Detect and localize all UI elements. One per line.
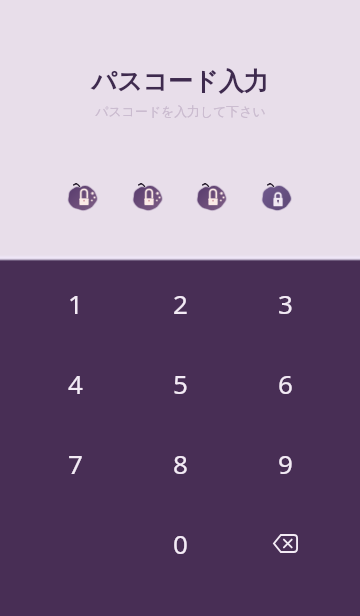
staticText: 2 <box>173 286 188 321</box>
button[interactable]: 4 <box>22 343 128 423</box>
button[interactable]: 5 <box>128 343 233 423</box>
button[interactable]: 6 <box>233 343 338 423</box>
staticText: 3 <box>278 286 293 321</box>
button[interactable]: 0 <box>128 503 233 583</box>
button[interactable]: 2 <box>128 263 233 343</box>
button[interactable]: 9 <box>233 423 338 503</box>
staticText: 0 <box>173 526 188 561</box>
staticText: パスコードを入力して下さい <box>95 104 266 120</box>
staticText: 9 <box>278 446 293 481</box>
button[interactable]: Backspace <box>233 503 338 583</box>
staticText: 6 <box>278 366 293 401</box>
button[interactable]: 3 <box>233 263 338 343</box>
button[interactable]: 8 <box>128 423 233 503</box>
button[interactable]: 1 <box>22 263 128 343</box>
staticText: 5 <box>173 366 188 401</box>
staticText: パスコード入力 <box>91 66 269 97</box>
button[interactable]: 7 <box>22 423 128 503</box>
staticText: 7 <box>68 446 83 481</box>
staticText: 4 <box>68 366 83 401</box>
staticText: 8 <box>173 446 188 481</box>
staticText: 1 <box>68 286 83 321</box>
